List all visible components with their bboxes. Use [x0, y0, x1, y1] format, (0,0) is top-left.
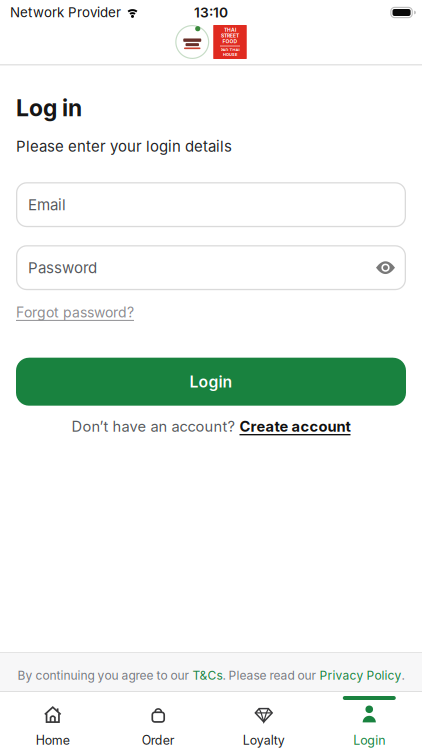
staticText: Loyalty	[243, 733, 285, 748]
staticText: Home	[36, 733, 70, 748]
staticText: Don’t have an account?	[71, 418, 234, 435]
staticText: FOOD	[222, 39, 237, 44]
staticText: HOUSE	[223, 52, 237, 57]
staticText: Log in	[16, 94, 82, 122]
staticText: Privacy Policy	[319, 668, 401, 683]
button[interactable]: Loyalty	[211, 692, 316, 748]
staticText: . Please read our	[222, 668, 319, 683]
button[interactable]: Home	[0, 692, 105, 748]
staticText: Email	[28, 196, 66, 214]
staticText: By continuing you agree to our	[17, 668, 192, 683]
staticText: PAD THAI	[220, 48, 239, 52]
staticText: STREET	[221, 33, 239, 39]
staticText: Password	[28, 259, 97, 277]
staticText: .	[401, 668, 404, 683]
staticText: Network Provider	[10, 5, 121, 20]
staticText: Please enter your login details	[16, 138, 232, 155]
staticText: Login	[189, 372, 232, 391]
staticText: Login	[353, 733, 385, 748]
staticText: Create account	[239, 418, 350, 435]
staticText: Forgot password?	[16, 304, 134, 321]
button[interactable]: Show password	[376, 261, 395, 274]
staticText: Order	[142, 733, 175, 748]
staticText: THAI	[224, 27, 236, 33]
button[interactable]: Create account	[239, 418, 350, 435]
button[interactable]: Order	[105, 692, 211, 748]
button[interactable]: Forgot password?	[16, 304, 134, 321]
staticText: T&Cs	[192, 668, 222, 683]
button[interactable]: Login	[16, 358, 406, 406]
button[interactable]: Privacy Policy	[319, 668, 401, 683]
button[interactable]: Login	[316, 692, 422, 748]
button[interactable]: T&Cs	[192, 668, 222, 683]
staticText: 13:10	[194, 4, 228, 21]
